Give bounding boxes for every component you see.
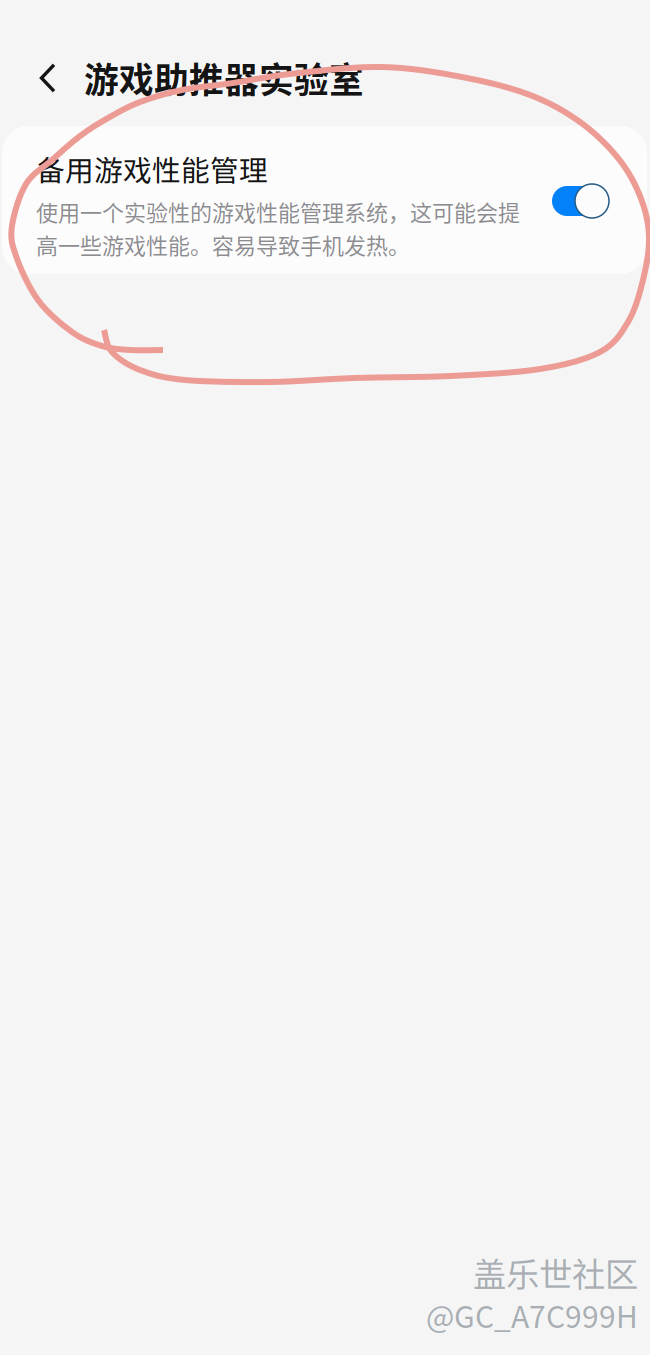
staticText: 盖乐世社区 xyxy=(473,1248,638,1296)
staticText: 备用游戏性能管理 xyxy=(36,148,268,189)
staticText: 游戏助推器实验室 xyxy=(84,53,364,103)
button[interactable]: Back xyxy=(12,48,84,108)
button[interactable]: 备用游戏性能管理 xyxy=(2,126,647,274)
staticText: @GC_A7C999H xyxy=(426,1293,638,1337)
staticText: 使用一个实验性的游戏性能管理系统，这可能会提高一些游戏性能。容易导致手机发热。 xyxy=(36,195,520,260)
